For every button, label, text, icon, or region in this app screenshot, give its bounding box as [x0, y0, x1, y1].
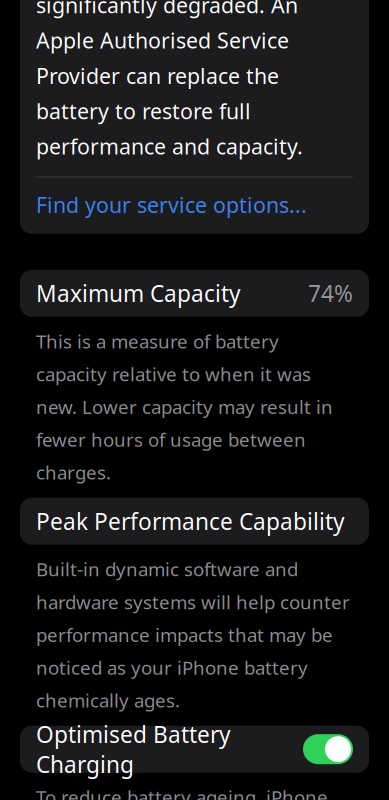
staticText: Maximum Capacity — [36, 278, 241, 308]
staticText: 74% — [308, 278, 353, 308]
staticText: Optimised Battery Charging — [36, 719, 231, 779]
staticText: Find your service options... — [36, 190, 307, 219]
staticText: To reduce battery ageing, iPhone learns … — [36, 785, 333, 800]
button[interactable]: Optimised Battery Charging, on — [303, 734, 353, 764]
button[interactable]: Find your service options... — [36, 177, 307, 232]
staticText: This is a measure of battery capacity re… — [36, 329, 333, 485]
staticText: Your battery's health is significantly d… — [36, 0, 303, 160]
staticText: Built-in dynamic software and hardware s… — [36, 557, 350, 713]
staticText: Peak Performance Capability — [36, 506, 345, 536]
